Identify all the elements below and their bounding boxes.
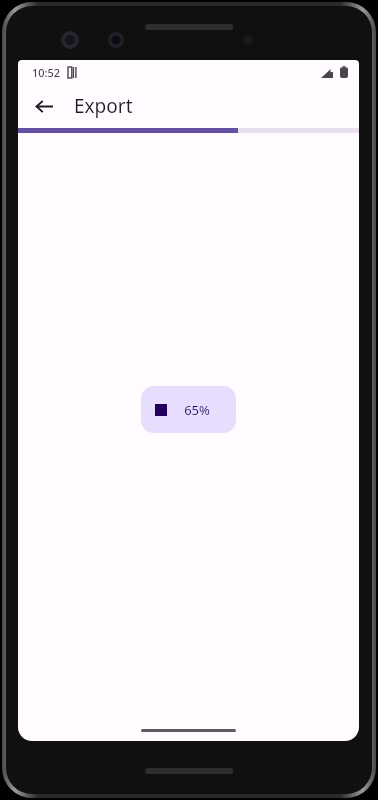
- staticText: Export: [74, 93, 133, 119]
- button[interactable]: 65%: [141, 386, 236, 433]
- button[interactable]: Back: [28, 90, 60, 122]
- staticText: 65%: [184, 401, 210, 419]
- staticText: 10:52: [32, 65, 61, 80]
